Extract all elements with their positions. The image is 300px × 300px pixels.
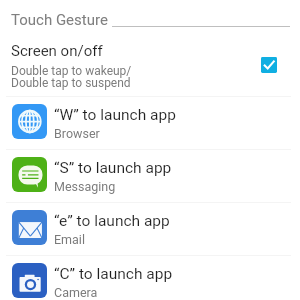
staticText: Email xyxy=(54,232,85,247)
staticText: Camera xyxy=(54,285,98,300)
staticText: “W” to launch app xyxy=(54,106,176,124)
staticText: Double tap to suspend xyxy=(11,76,131,90)
staticText: Screen on/off xyxy=(11,42,103,60)
button[interactable]: “C” to launch app xyxy=(0,256,300,300)
button[interactable]: Screen on/off enabled xyxy=(261,57,277,73)
staticText: Touch Gesture xyxy=(11,11,108,29)
staticText: Double tap to wakeup/ xyxy=(11,64,132,78)
button[interactable]: “e” to launch app xyxy=(0,203,300,255)
staticText: “C” to launch app xyxy=(54,265,173,283)
button[interactable]: “W” to launch app xyxy=(0,97,300,149)
button[interactable]: “S” to launch app xyxy=(0,150,300,202)
staticText: Browser xyxy=(54,126,100,141)
staticText: Messaging xyxy=(54,179,116,194)
button[interactable]: Screen on/off xyxy=(0,36,300,94)
staticText: “S” to launch app xyxy=(54,159,172,177)
staticText: “e” to launch app xyxy=(54,212,170,230)
